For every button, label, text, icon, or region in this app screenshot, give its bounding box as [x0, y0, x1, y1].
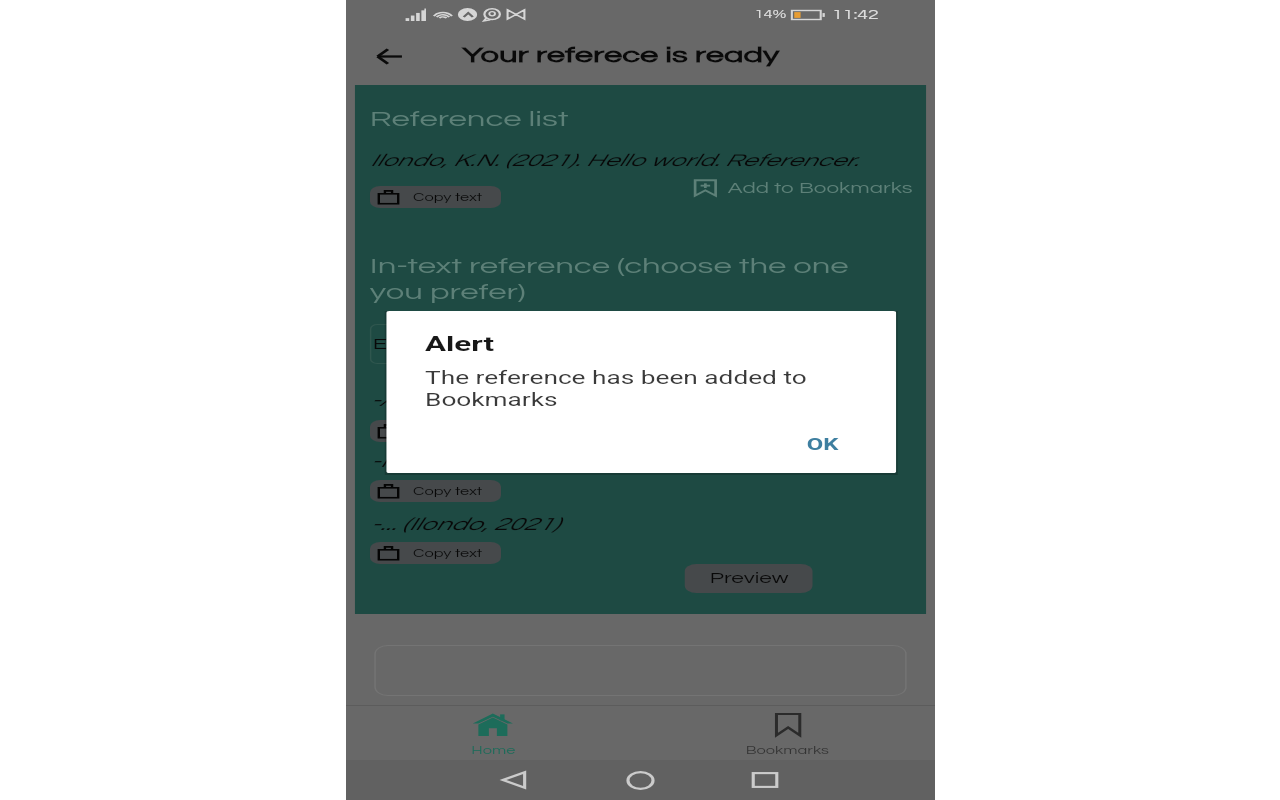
- staticText: Copy text: [413, 192, 483, 203]
- button[interactable]: Copy text: [370, 420, 501, 442]
- staticText: Reference list: [370, 108, 570, 131]
- button[interactable]: Recents: [737, 762, 792, 798]
- staticText: -I: [370, 452, 386, 471]
- button[interactable]: Copy text: [370, 480, 501, 502]
- button[interactable]: Preview: [684, 564, 813, 593]
- staticText: Copy text: [413, 548, 483, 559]
- button[interactable]: Home: [613, 762, 668, 798]
- button[interactable]: Back: [486, 762, 541, 798]
- button[interactable]: Back: [364, 39, 415, 73]
- button[interactable]: Add to Bookmarks: [693, 179, 913, 197]
- staticText: Ilondo, K.N. (2021). Hello world. Refere…: [370, 152, 859, 170]
- staticText: Copy text: [413, 486, 483, 497]
- staticText: Your referece is ready: [462, 44, 780, 67]
- button[interactable]: OK: [795, 432, 869, 465]
- staticText: Add to Bookmarks: [728, 181, 913, 196]
- staticText: 14%: [755, 9, 787, 20]
- staticText: Alert: [425, 332, 495, 357]
- staticText: OK: [807, 435, 840, 454]
- staticText: 11:42: [832, 8, 880, 21]
- staticText: The reference has been added to Bookmark…: [425, 368, 869, 410]
- staticText: In-text reference (choose the one you pr…: [370, 255, 877, 303]
- button[interactable]: Home: [346, 705, 640, 760]
- button[interactable]: Copy text: [370, 542, 501, 564]
- staticText: Preview: [710, 571, 789, 586]
- staticText: E: [373, 336, 388, 352]
- staticText: -A: [370, 391, 398, 410]
- button[interactable]: Bookmarks: [640, 705, 935, 760]
- button[interactable]: Copy text: [370, 186, 501, 208]
- staticText: Home: [471, 745, 516, 756]
- staticText: -... (Ilondo, 2021): [370, 515, 559, 534]
- staticText: Bookmarks: [746, 745, 829, 756]
